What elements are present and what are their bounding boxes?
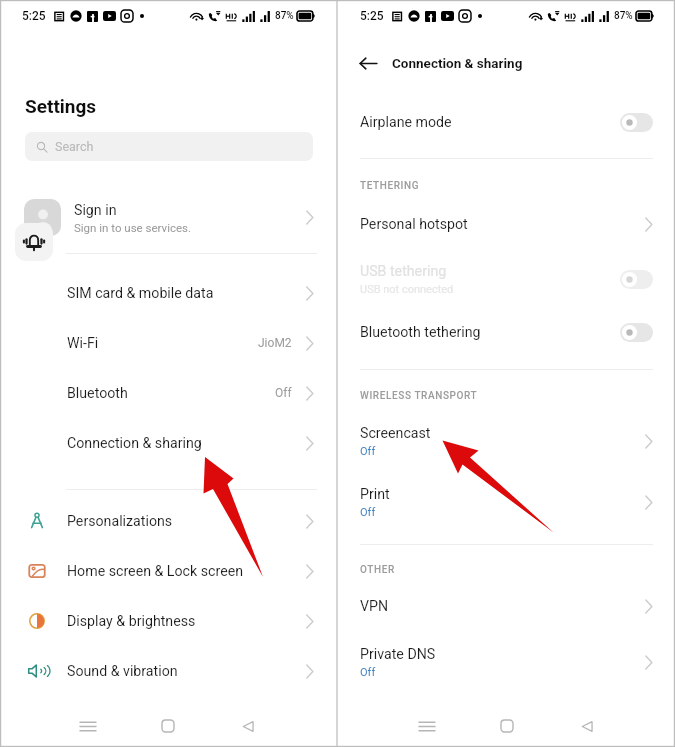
- button[interactable]: Back: [565, 704, 609, 747]
- staticText: Off: [360, 445, 376, 458]
- staticText: Connection & sharing: [67, 435, 202, 452]
- staticText: Bluetooth: [67, 385, 128, 402]
- staticText: Off: [275, 386, 292, 400]
- staticText: Settings: [25, 95, 97, 117]
- button[interactable]: Back: [354, 49, 382, 77]
- button[interactable]: Notifications: [15, 223, 53, 261]
- button[interactable]: VPN: [338, 583, 675, 629]
- staticText: Personal hotspot: [360, 216, 468, 233]
- button[interactable]: SIM card & mobile data: [0, 268, 336, 318]
- button[interactable]: Sign in: [0, 182, 336, 253]
- button[interactable]: Screencast: [338, 418, 675, 464]
- staticText: Private DNS: [360, 646, 436, 663]
- staticText: USB not connected: [360, 283, 454, 296]
- staticText: Print: [360, 486, 390, 503]
- button[interactable]: Display & brightness: [0, 596, 336, 646]
- staticText: WIRELESS TRANSPORT: [360, 390, 478, 402]
- staticText: Sign in: [74, 202, 117, 219]
- staticText: 5:25: [22, 9, 46, 23]
- button[interactable]: Home: [146, 704, 190, 747]
- button[interactable]: Search: [25, 132, 313, 161]
- button[interactable]: Sound & vibration: [0, 646, 336, 696]
- staticText: Sign in to use services.: [74, 221, 192, 234]
- button[interactable]: USB tethering: [338, 256, 675, 302]
- button[interactable]: Home: [485, 704, 529, 747]
- button[interactable]: Personalizations: [0, 496, 336, 546]
- button[interactable]: Bluetooth: [0, 368, 336, 418]
- staticText: Bluetooth tethering: [360, 324, 481, 341]
- staticText: Search: [55, 139, 94, 154]
- staticText: Personalizations: [67, 513, 173, 530]
- button[interactable]: Wi-Fi: [0, 318, 336, 368]
- staticText: TETHERING: [360, 180, 420, 192]
- staticText: OTHER: [360, 564, 395, 576]
- button[interactable]: Back: [226, 704, 270, 747]
- staticText: Screencast: [360, 425, 431, 442]
- button[interactable]: Print: [338, 479, 675, 525]
- staticText: USB tethering: [360, 263, 447, 280]
- staticText: VPN: [360, 598, 389, 615]
- staticText: Home screen & Lock screen: [67, 563, 244, 580]
- button[interactable]: Bluetooth tethering: [338, 309, 675, 355]
- staticText: Sound & vibration: [67, 663, 178, 680]
- staticText: 87%: [614, 10, 633, 22]
- staticText: Off: [360, 506, 376, 519]
- staticText: Wi-Fi: [67, 335, 99, 352]
- staticText: Display & brightness: [67, 613, 196, 630]
- button[interactable]: Private DNS: [338, 639, 675, 685]
- button[interactable]: Home screen & Lock screen: [0, 546, 336, 596]
- staticText: Airplane mode: [360, 114, 452, 131]
- button[interactable]: Personal hotspot: [338, 201, 675, 247]
- staticText: 87%: [275, 10, 294, 22]
- staticText: Off: [360, 666, 376, 679]
- staticText: SIM card & mobile data: [67, 285, 214, 302]
- staticText: Connection & sharing: [392, 55, 523, 71]
- button[interactable]: Connection & sharing: [0, 418, 336, 468]
- staticText: JioM2: [258, 336, 292, 350]
- button[interactable]: Recents: [405, 704, 449, 747]
- button[interactable]: Recents: [66, 704, 110, 747]
- staticText: 5:25: [360, 9, 384, 23]
- button[interactable]: Airplane mode: [338, 99, 675, 145]
